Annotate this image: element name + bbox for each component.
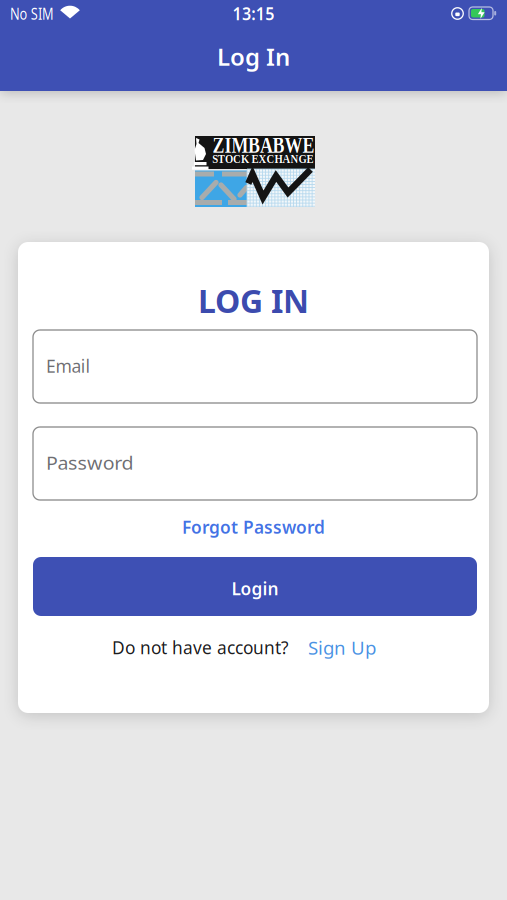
staticText: 13:15 xyxy=(231,2,276,25)
staticText: Forgot Password xyxy=(182,515,325,538)
staticText: Sign Up xyxy=(308,635,376,660)
staticText: LOG IN xyxy=(198,279,309,322)
staticText: Password xyxy=(46,450,129,475)
staticText: STOCK EXCHANGE xyxy=(199,151,326,166)
staticText: Log In xyxy=(217,41,290,72)
staticText: Login xyxy=(231,577,278,600)
staticText: Email xyxy=(46,353,93,378)
staticText: Do not have account? xyxy=(112,636,289,659)
staticText: No SIM xyxy=(10,3,65,24)
staticText: ZIMBABWE xyxy=(199,132,328,157)
